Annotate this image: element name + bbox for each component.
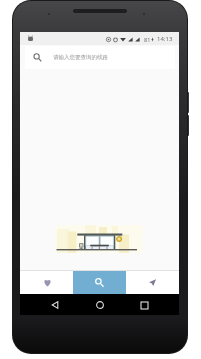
staticText: 81	[144, 36, 151, 43]
button[interactable]: Back	[46, 296, 64, 314]
button[interactable]: Favorites	[20, 271, 73, 294]
button[interactable]: Navigate	[126, 271, 179, 294]
button[interactable]: 请输入您要查询的线路	[25, 46, 175, 69]
button[interactable]: Search	[73, 271, 126, 294]
button[interactable]: Home	[91, 296, 109, 314]
staticText: 14:13	[157, 35, 173, 43]
button[interactable]: Recents	[135, 296, 153, 314]
staticText: 请输入您要查询的线路	[53, 54, 108, 61]
